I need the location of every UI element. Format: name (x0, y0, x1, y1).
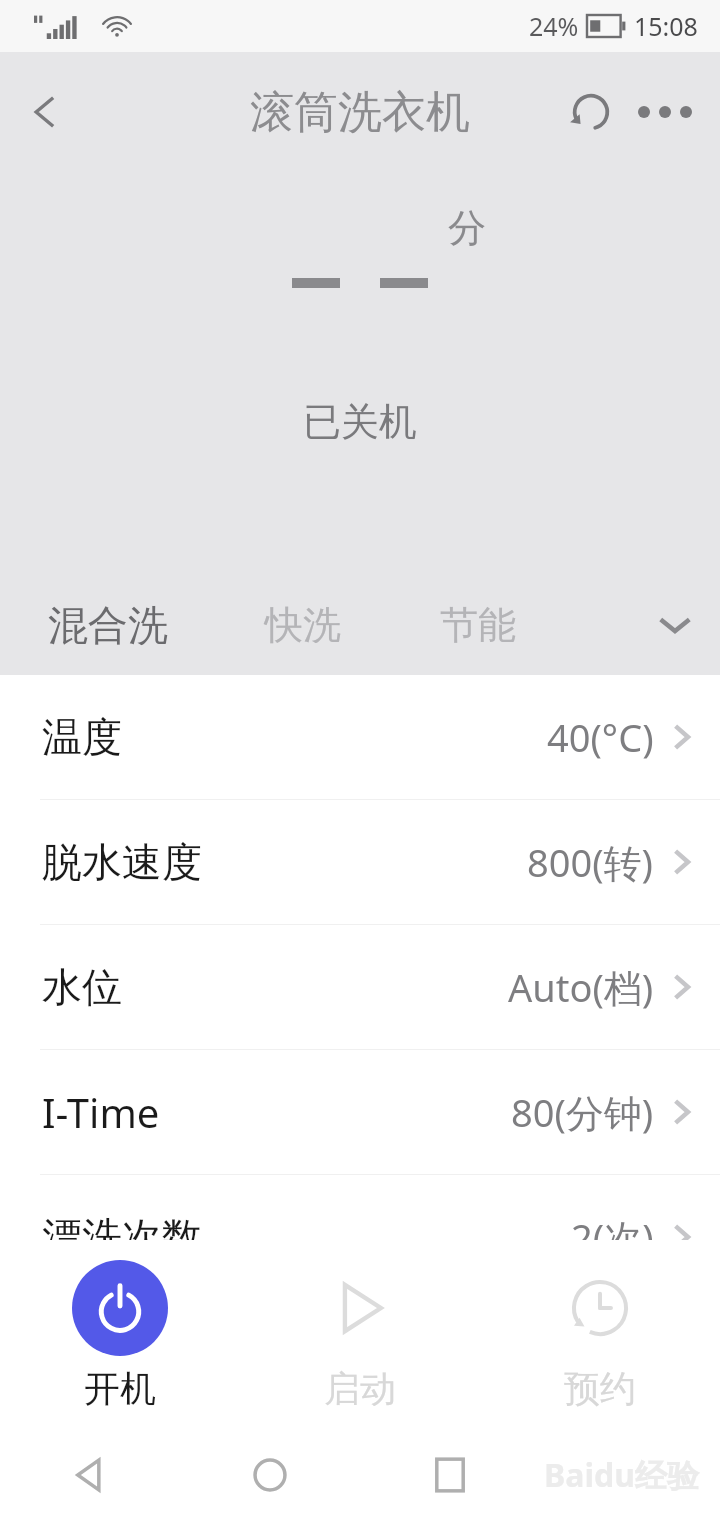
button[interactable]: Home (180, 1430, 360, 1520)
staticText: 800(转) (527, 836, 654, 888)
button[interactable]: Refresh (554, 75, 628, 149)
button[interactable]: Schedule (480, 1240, 720, 1430)
staticText: 快洗 (265, 601, 341, 649)
staticText: 预约 (564, 1366, 636, 1411)
staticText: 滚筒洗衣机 (250, 85, 470, 140)
staticText: 2(次) (571, 1211, 654, 1263)
staticText: I-Time (42, 1085, 160, 1139)
staticText: 漂洗次数 (42, 1212, 202, 1262)
staticText: 24% (529, 9, 579, 43)
button[interactable]: 快洗 (215, 575, 390, 675)
button[interactable]: Start (240, 1240, 480, 1430)
staticText: 温度 (42, 712, 122, 762)
staticText: Baidu经验 (544, 1453, 700, 1497)
button[interactable]: 漂洗次数 (0, 1175, 720, 1299)
button[interactable]: 脱水速度 (0, 800, 720, 924)
staticText: 40(°C) (547, 711, 654, 763)
staticText: 开机 (84, 1366, 156, 1411)
button[interactable]: Expand modes (630, 575, 720, 675)
button[interactable]: 节能 (390, 575, 565, 675)
staticText: 脱水速度 (42, 837, 202, 887)
button[interactable]: 混合洗 (0, 575, 215, 675)
button[interactable]: 温度 (0, 675, 720, 799)
staticText: Auto(档) (508, 961, 654, 1013)
staticText: 15:08 (634, 9, 698, 43)
staticText: 启动 (324, 1366, 396, 1411)
staticText: 水位 (42, 962, 122, 1012)
button[interactable]: More options (628, 75, 702, 149)
button[interactable]: Recent apps (360, 1430, 540, 1520)
staticText: 混合洗 (48, 600, 168, 650)
staticText: 80(分钟) (511, 1086, 654, 1138)
staticText: 分 (448, 204, 486, 252)
button[interactable]: Power on (0, 1240, 240, 1430)
button[interactable]: I-Time (0, 1050, 720, 1174)
staticText: 节能 (440, 601, 516, 649)
button[interactable]: Back (0, 1430, 180, 1520)
staticText: 已关机 (303, 398, 417, 446)
button[interactable]: Back (8, 75, 82, 149)
button[interactable]: 水位 (0, 925, 720, 1049)
